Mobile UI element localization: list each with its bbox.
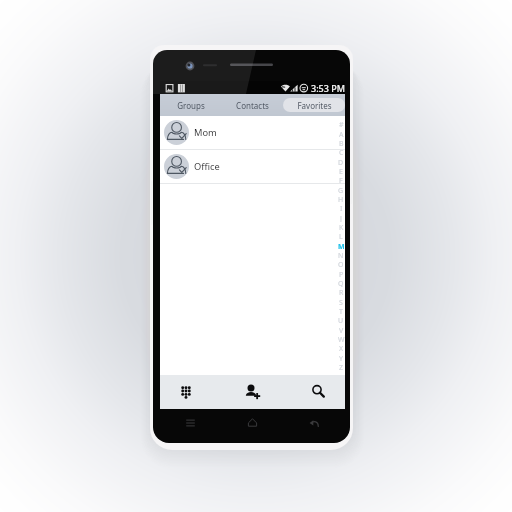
staticText: Z: [339, 363, 344, 371]
staticText: U: [338, 316, 344, 324]
staticText: #: [339, 120, 344, 128]
staticText: Favorites: [297, 100, 332, 111]
staticText: Office: [194, 160, 220, 173]
button[interactable]: Add contact: [237, 375, 269, 409]
staticText: 3:53 PM: [311, 82, 345, 94]
staticText: B: [339, 139, 344, 147]
button[interactable]: Back: [283, 407, 345, 437]
staticText: X: [339, 344, 344, 352]
staticText: Groups: [177, 100, 205, 111]
staticText: Q: [338, 279, 344, 287]
staticText: G: [338, 186, 344, 194]
staticText: I: [340, 204, 343, 212]
staticText: K: [339, 223, 344, 231]
staticText: Y: [339, 354, 343, 362]
staticText: O: [338, 260, 344, 268]
staticText: S: [339, 298, 343, 306]
button[interactable]: Groups: [160, 98, 221, 112]
staticText: L: [339, 232, 343, 240]
staticText: H: [338, 195, 344, 203]
staticText: C: [339, 148, 344, 156]
staticText: F: [339, 176, 343, 184]
staticText: T: [339, 307, 343, 315]
staticText: P: [339, 270, 344, 278]
staticText: Contacts: [236, 100, 269, 111]
staticText: D: [338, 158, 344, 166]
staticText: J: [340, 214, 342, 222]
staticText: N: [338, 251, 344, 259]
button[interactable]: Search: [303, 375, 335, 409]
button[interactable]: Mom: [160, 116, 345, 149]
button[interactable]: Alphabet index: [337, 116, 345, 375]
staticText: V: [339, 326, 344, 334]
staticText: Mom: [194, 126, 217, 139]
button[interactable]: Dialpad: [170, 375, 202, 409]
staticText: A: [339, 130, 344, 138]
staticText: R: [339, 288, 344, 296]
button[interactable]: Favorites: [283, 98, 345, 112]
button[interactable]: Menu: [160, 407, 221, 437]
staticText: M: [338, 242, 345, 250]
button[interactable]: Contacts: [221, 98, 283, 112]
staticText: E: [339, 167, 343, 175]
button[interactable]: Office: [160, 150, 345, 183]
button[interactable]: Home: [221, 407, 283, 437]
staticText: W: [338, 335, 345, 343]
